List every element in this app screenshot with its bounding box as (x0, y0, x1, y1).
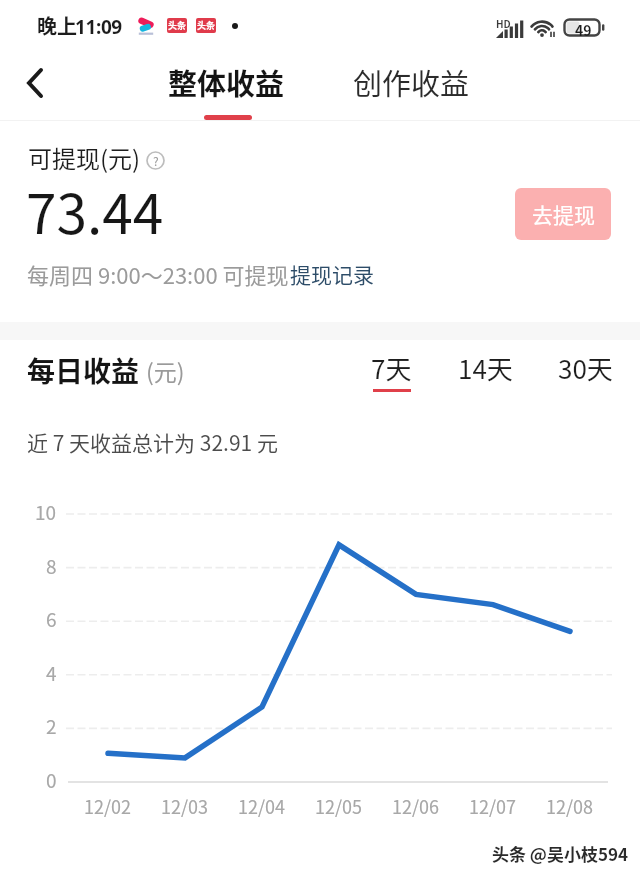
staticText: 头条 @吴小枝594 (492, 841, 629, 866)
button[interactable]: Back (10, 58, 60, 108)
staticText: 49 (575, 20, 592, 37)
staticText: 可提现(元) (28, 140, 141, 175)
staticText: 每周四 9:00～23:00 可提现 (27, 258, 289, 290)
staticText: 12/02 (84, 793, 132, 819)
staticText: 0 (46, 766, 57, 794)
staticText: 11:09 (75, 14, 122, 40)
staticText: 14天 (458, 349, 513, 387)
staticText: 整体收益 (168, 61, 285, 103)
button[interactable]: 整体收益 (156, 50, 298, 121)
staticText: 去提现 (532, 199, 595, 229)
staticText: 晚上 (37, 11, 77, 40)
button[interactable]: 去提现 (515, 188, 611, 240)
button[interactable]: 14天 (448, 341, 523, 400)
staticText: 提现记录 (290, 259, 374, 289)
staticText: 每日收益 (27, 350, 140, 391)
button[interactable]: 7天 (361, 341, 422, 400)
staticText: (元) (146, 354, 185, 387)
staticText: 近 7 天收益总计为 32.91 元 (27, 427, 278, 457)
staticText: 12/04 (238, 793, 286, 819)
staticText: 6 (46, 605, 57, 633)
button[interactable]: Help (146, 151, 165, 170)
staticText: 73.44 (26, 170, 164, 250)
staticText: 12/06 (392, 793, 440, 819)
button[interactable]: 30天 (548, 341, 623, 400)
staticText: 10 (35, 498, 57, 526)
staticText: 12/03 (161, 793, 209, 819)
staticText: 12/05 (315, 793, 363, 819)
staticText: 头条 (197, 19, 216, 32)
staticText: 30天 (558, 349, 613, 387)
button[interactable]: 创作收益 (341, 50, 483, 121)
staticText: 8 (46, 552, 57, 580)
staticText: HD (496, 16, 511, 30)
staticText: 4 (46, 659, 57, 687)
staticText: 头条 (168, 19, 187, 32)
staticText: 7天 (371, 349, 412, 387)
button[interactable]: 提现记录 (290, 259, 374, 289)
staticText: 2 (46, 712, 57, 740)
staticText: 创作收益 (353, 61, 470, 103)
staticText: 12/07 (469, 793, 517, 819)
staticText: ? (153, 152, 159, 169)
staticText: 12/08 (546, 793, 594, 819)
